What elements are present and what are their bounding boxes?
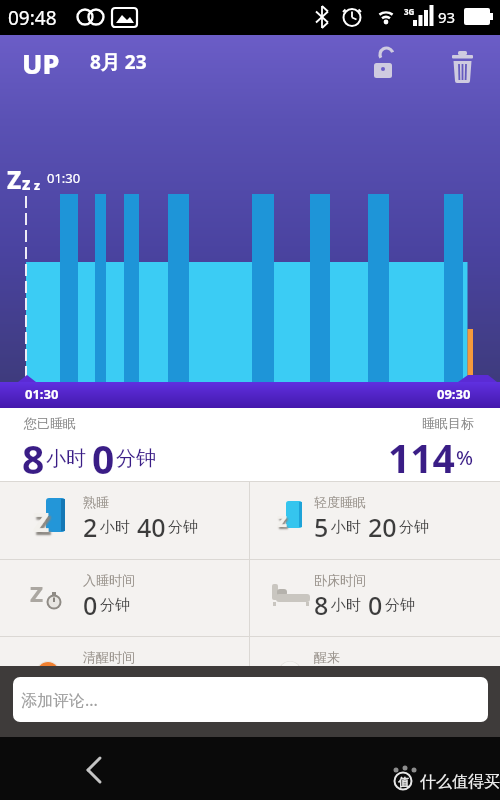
staticText: 您已睡眠: [24, 415, 76, 431]
button[interactable]: [366, 43, 406, 87]
button[interactable]: Z: [0, 482, 249, 559]
staticText: 93: [438, 7, 456, 27]
staticText: 20: [368, 510, 397, 540]
staticText: 114: [388, 431, 455, 475]
button[interactable]: 添加评论...: [13, 677, 488, 722]
staticText: 8: [314, 588, 329, 618]
staticText: 小时: [331, 596, 361, 615]
staticText: 0: [83, 588, 98, 618]
staticText: 分钟: [385, 596, 415, 615]
staticText: 分钟: [100, 596, 130, 615]
staticText: 0: [92, 432, 115, 476]
staticText: 睡眠目标: [422, 415, 474, 431]
staticText: 轻度睡眠: [314, 494, 366, 510]
staticText: 熟睡: [83, 494, 109, 510]
staticText: 2: [83, 510, 98, 540]
staticText: 小时: [100, 518, 130, 537]
staticText: 次: [331, 673, 346, 692]
staticText: Z: [30, 578, 44, 608]
staticText: 添加评论...: [21, 689, 98, 711]
staticText: z: [34, 177, 40, 193]
staticText: z: [277, 506, 287, 533]
staticText: 01:30: [47, 169, 81, 187]
staticText: z: [22, 172, 31, 195]
staticText: 分钟: [116, 446, 156, 471]
staticText: 3G: [404, 6, 415, 17]
staticText: 40: [137, 510, 166, 540]
button[interactable]: [440, 43, 480, 87]
staticText: 0: [83, 665, 98, 695]
staticText: 0: [368, 588, 383, 618]
button[interactable]: Z: [0, 560, 249, 636]
staticText: 小时: [331, 518, 361, 537]
staticText: 清醒时间: [83, 649, 135, 665]
staticText: 小时: [46, 446, 86, 471]
staticText: UP: [22, 45, 60, 82]
button[interactable]: 卧床时间: [250, 560, 500, 636]
staticText: 分钟: [399, 518, 429, 537]
staticText: %: [456, 444, 474, 471]
staticText: 09:30: [437, 385, 471, 403]
button[interactable]: 清醒时间: [0, 637, 249, 714]
staticText: Z: [7, 163, 22, 196]
staticText: 09:48: [8, 5, 57, 31]
button[interactable]: 醒来: [250, 637, 500, 714]
staticText: Z: [33, 503, 50, 540]
staticText: 卧床时间: [314, 572, 366, 588]
staticText: 醒来: [314, 649, 340, 665]
staticText: 8: [22, 432, 45, 476]
button[interactable]: z: [250, 482, 500, 559]
button[interactable]: [70, 745, 126, 793]
staticText: 分钟: [100, 673, 130, 692]
staticText: 5: [314, 510, 329, 540]
staticText: 分钟: [168, 518, 198, 537]
staticText: 01:30: [25, 385, 59, 403]
staticText: 0: [314, 665, 329, 695]
staticText: 值: [398, 775, 409, 789]
staticText: 什么值得买: [420, 772, 500, 792]
staticText: 8月 23: [90, 49, 147, 75]
staticText: 入睡时间: [83, 572, 135, 588]
